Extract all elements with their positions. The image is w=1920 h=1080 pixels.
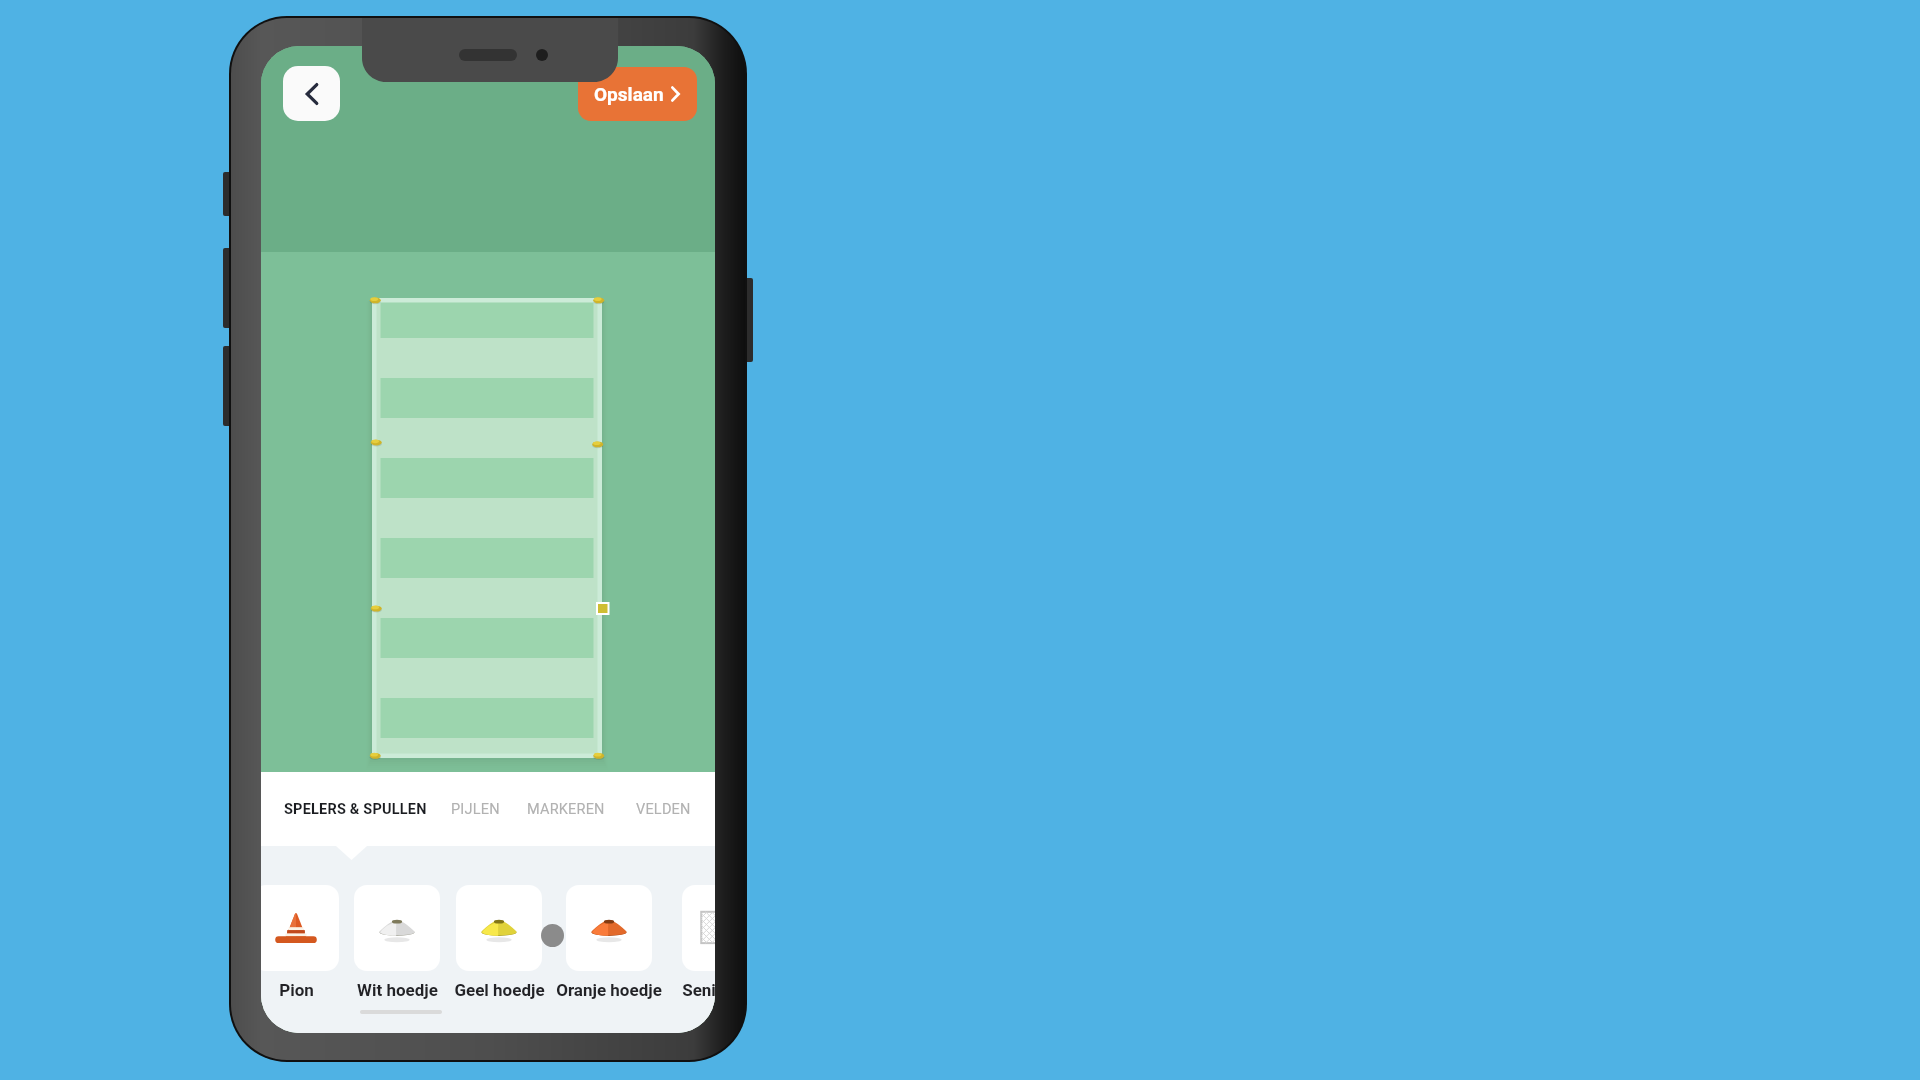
button[interactable]: PIJLEN (451, 772, 503, 846)
staticText: Oranje hoedje (556, 980, 662, 1000)
staticText: Pion (279, 980, 314, 1000)
button[interactable]: Back (283, 66, 340, 121)
button[interactable]: MARKEREN (527, 772, 613, 846)
staticText: Opslaan (594, 83, 664, 105)
button[interactable] (261, 885, 339, 971)
staticText: VELDEN (636, 801, 691, 818)
staticText: MARKEREN (527, 801, 605, 818)
button[interactable]: SPELERS & SPULLEN (284, 772, 444, 846)
staticText: SPELERS & SPULLEN (284, 801, 427, 818)
button[interactable] (456, 885, 542, 971)
button[interactable] (354, 885, 440, 971)
button[interactable] (682, 885, 715, 971)
staticText: Geel hoedje (454, 980, 545, 1000)
button[interactable]: Opslaan (578, 67, 697, 121)
staticText: PIJLEN (451, 801, 500, 818)
button[interactable]: VELDEN (636, 772, 698, 846)
button[interactable] (566, 885, 652, 971)
staticText: Wit hoedje (357, 980, 438, 1000)
staticText: Senior doel (682, 980, 715, 1000)
